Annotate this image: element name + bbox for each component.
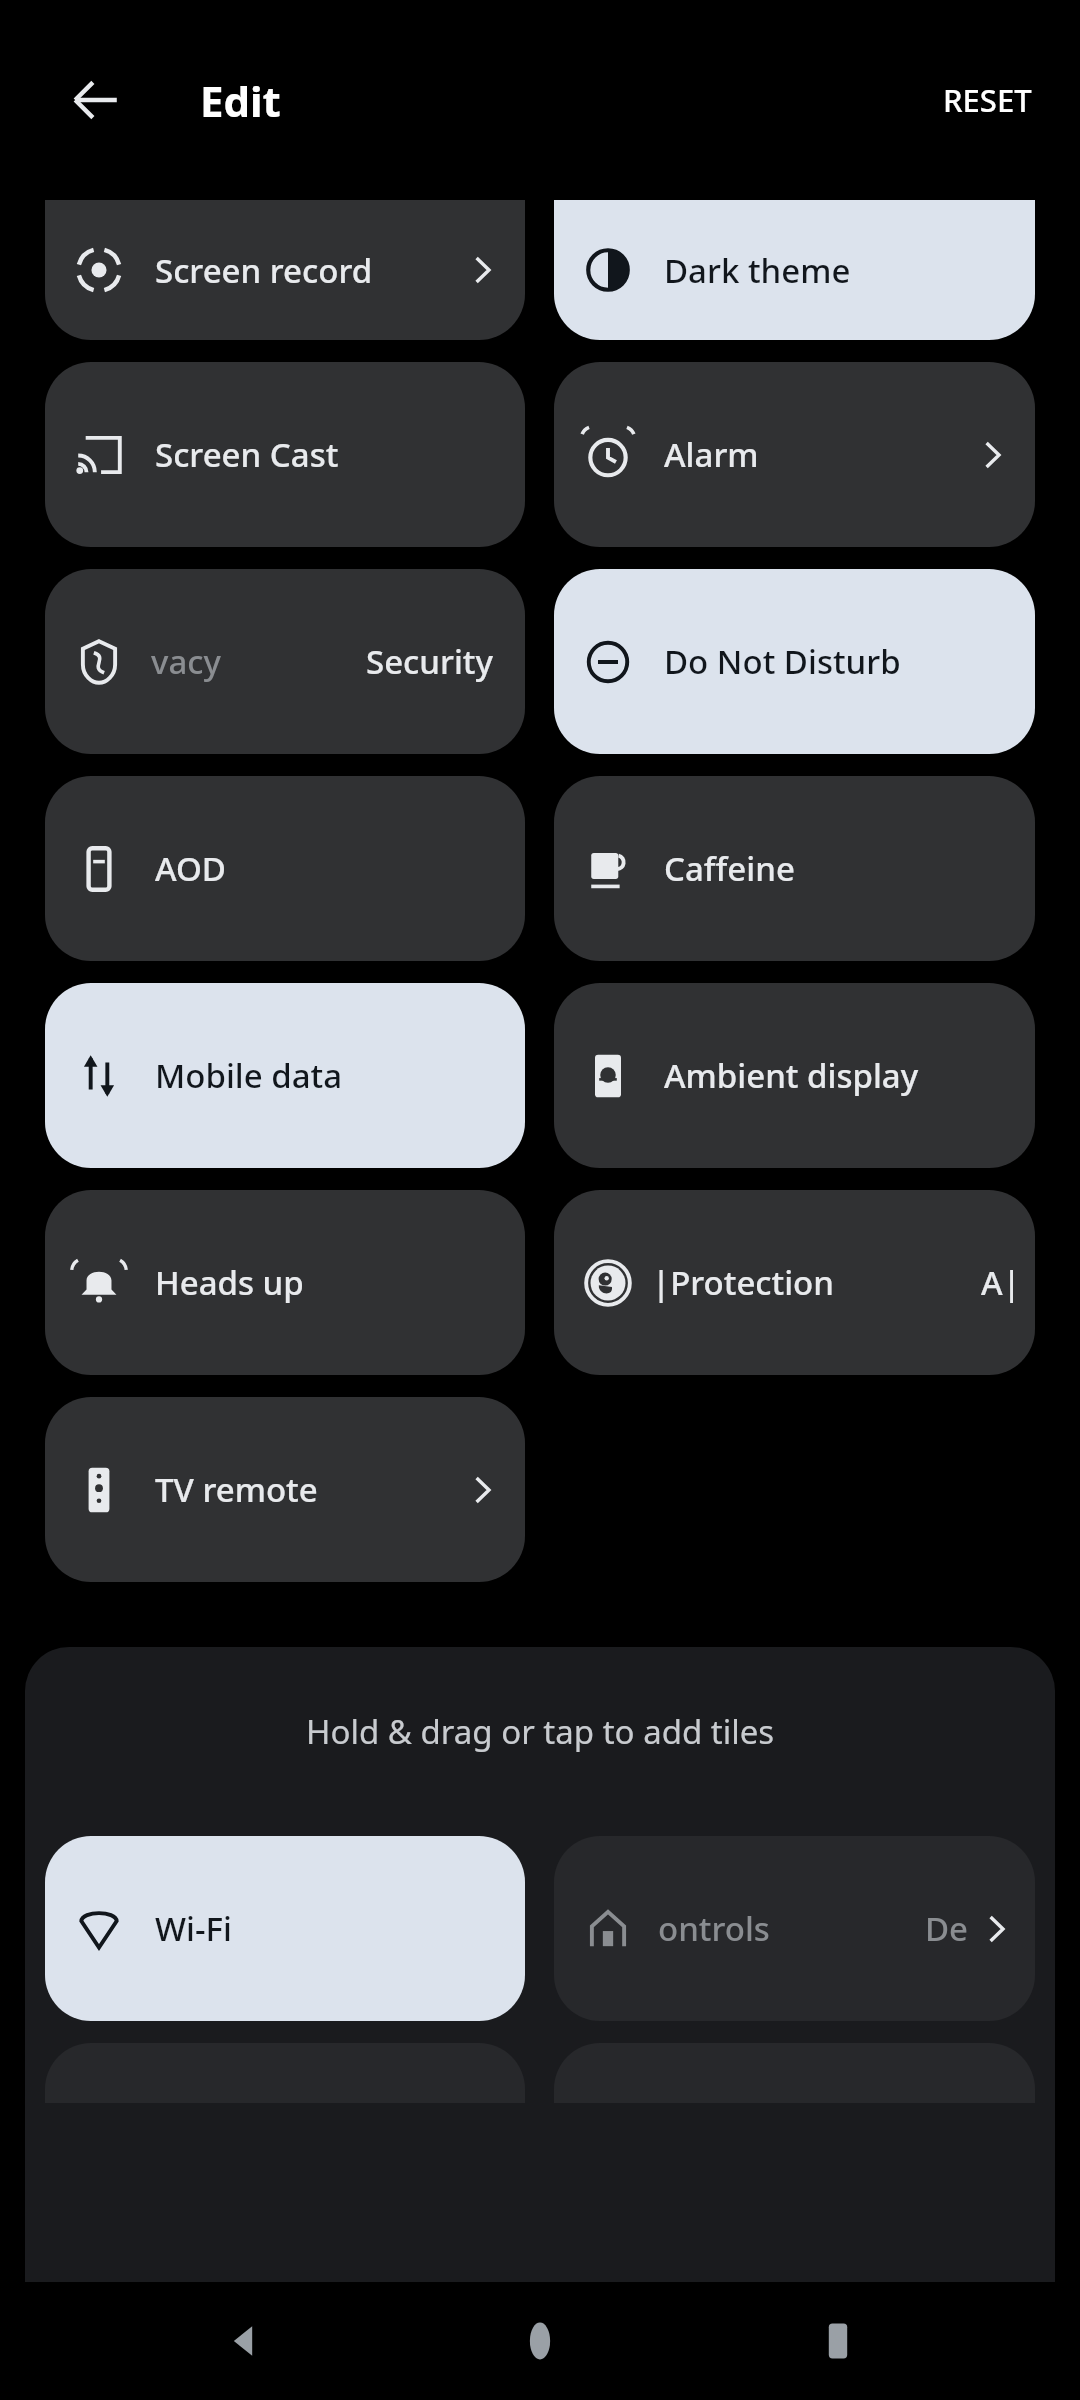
staticText: TV remote (155, 1467, 463, 1512)
staticText: Alarm (664, 432, 973, 477)
staticText: ontrols (658, 1906, 770, 1951)
button[interactable]: Heads up (45, 1190, 525, 1375)
staticText: Caffeine (664, 846, 1013, 891)
button[interactable]: Screen record (45, 200, 525, 340)
button[interactable]: Screen Cast (45, 362, 525, 547)
staticText: AOD (155, 846, 503, 891)
staticText: Heads up (155, 1260, 503, 1305)
staticText: Edit (200, 72, 281, 129)
button[interactable]: Recents (783, 2286, 893, 2396)
staticText: Screen record (155, 248, 463, 293)
button[interactable]: Do Not Disturb (554, 569, 1035, 754)
button[interactable]: AOD (45, 776, 525, 961)
button[interactable]: Dark theme (554, 200, 1035, 340)
staticText: Do Not Disturb (664, 639, 1013, 684)
button[interactable]: Mobile data (45, 983, 525, 1168)
staticText: Wi-Fi (155, 1906, 503, 1951)
button[interactable]: Wi-Fi (45, 1836, 525, 2021)
button[interactable]: TV remote (45, 1397, 525, 1582)
button[interactable]: Home (485, 2286, 595, 2396)
staticText: vacy (151, 639, 221, 684)
button[interactable]: Back (188, 2286, 298, 2396)
staticText: Ambient display (664, 1053, 1013, 1098)
staticText: Mobile data (155, 1053, 503, 1098)
button[interactable]: Caffeine (554, 776, 1035, 961)
button[interactable]: Alarm (554, 362, 1035, 547)
staticText: De (925, 1906, 969, 1951)
button[interactable]: vacy (45, 569, 525, 754)
staticText: Hold & drag or tap to add tiles (306, 1709, 775, 1754)
staticText: Dark theme (664, 248, 1013, 293)
button[interactable]: ontrols (554, 1836, 1035, 2021)
button[interactable]: Back (48, 52, 144, 148)
staticText: |Protection (652, 1260, 834, 1305)
staticText: A| (981, 1260, 1021, 1305)
button[interactable]: RESET (943, 79, 1032, 121)
button[interactable]: |Protection (554, 1190, 1035, 1375)
button[interactable]: Ambient display (554, 983, 1035, 1168)
staticText: RESET (943, 79, 1032, 121)
staticText: Security (366, 639, 493, 684)
staticText: Screen Cast (155, 432, 503, 477)
